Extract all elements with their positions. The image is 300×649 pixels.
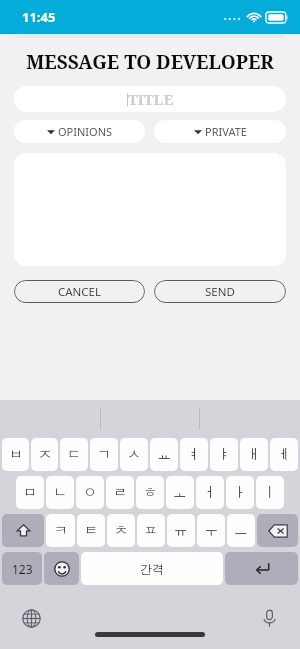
button[interactable]: OPINIONS [14, 120, 145, 143]
button[interactable]: ㅋ [46, 514, 75, 547]
staticText: TITLE [128, 89, 174, 109]
button[interactable]: Voice input [254, 603, 284, 633]
button[interactable]: TITLE [14, 86, 286, 112]
button[interactable]: 간격 [81, 552, 223, 585]
button[interactable]: ㅗ [166, 476, 194, 509]
button[interactable]: PRIVATE [154, 120, 286, 143]
button[interactable]: ㅍ [137, 514, 165, 547]
staticText: ㅅ [127, 446, 141, 464]
staticText: ㅐ [247, 446, 261, 464]
button[interactable]: ㅌ [77, 514, 105, 547]
button[interactable]: 123 [2, 552, 42, 585]
button[interactable]: ㅊ [107, 514, 135, 547]
staticText: ㅁ [23, 484, 37, 502]
staticText: 11:45 [22, 8, 56, 26]
staticText: ㅗ [173, 484, 187, 502]
button[interactable]: ㅐ [240, 438, 268, 471]
staticText: ㅣ [263, 484, 277, 502]
staticText: ㅍ [144, 522, 158, 540]
staticText: ㅜ [204, 522, 218, 540]
button[interactable]: ㅡ [227, 514, 255, 547]
button[interactable]: ㅂ [2, 438, 29, 471]
button[interactable]: Change language [16, 603, 46, 633]
button[interactable]: ㅣ [256, 476, 284, 509]
staticText: SEND [205, 284, 235, 300]
button[interactable]: ㅅ [120, 438, 148, 471]
staticText: ㅕ [187, 446, 201, 464]
staticText: CANCEL [58, 284, 102, 300]
staticText: ㅇ [83, 484, 97, 502]
staticText: ㅡ [234, 522, 248, 540]
staticText: 123 [12, 561, 33, 577]
button[interactable]: ㄷ [60, 438, 88, 471]
button[interactable]: Emoji [44, 552, 79, 585]
staticText: PRIVATE [205, 124, 247, 139]
staticText: ㅊ [114, 522, 128, 540]
button[interactable]: ㅎ [136, 476, 164, 509]
button[interactable]: ㅜ [197, 514, 225, 547]
button[interactable]: CANCEL [14, 280, 145, 303]
staticText: ㅓ [203, 484, 217, 502]
button[interactable]: ㅓ [196, 476, 224, 509]
button[interactable]: ㅠ [167, 514, 195, 547]
button[interactable]: SEND [154, 280, 286, 303]
button[interactable]: ㅕ [180, 438, 208, 471]
staticText: ㅂ [9, 446, 23, 464]
button[interactable]: ㅛ [150, 438, 178, 471]
button[interactable]: ㄹ [106, 476, 134, 509]
staticText: ㄹ [113, 484, 127, 502]
button[interactable]: Backspace [257, 514, 298, 547]
button[interactable]: ㅑ [210, 438, 238, 471]
button[interactable]: ㅈ [31, 438, 58, 471]
staticText: OPINIONS [58, 124, 113, 139]
staticText: ㅎ [143, 484, 157, 502]
button[interactable]: ㅇ [76, 476, 104, 509]
staticText: ㅋ [54, 522, 68, 540]
button[interactable]: ㅔ [270, 438, 298, 471]
staticText: ㄴ [53, 484, 67, 502]
button[interactable]: ㄱ [90, 438, 118, 471]
staticText: 간격 [140, 561, 164, 576]
staticText: ㅌ [84, 522, 98, 540]
button[interactable]: ㅏ [226, 476, 254, 509]
button[interactable]: ㄴ [46, 476, 74, 509]
staticText: ㄷ [67, 446, 81, 464]
staticText: ㅠ [174, 522, 188, 540]
staticText: MESSAGE TO DEVELOPER [14, 49, 286, 75]
staticText: ㅛ [157, 446, 171, 464]
staticText: ㅑ [217, 446, 231, 464]
staticText: ㅏ [233, 484, 247, 502]
staticText: ㅔ [277, 446, 291, 464]
staticText: ㄱ [97, 446, 111, 464]
button[interactable]: Shift [2, 514, 44, 547]
button[interactable]: ㅁ [16, 476, 44, 509]
button[interactable]: Enter [225, 552, 298, 585]
staticText: ㅈ [38, 446, 52, 464]
